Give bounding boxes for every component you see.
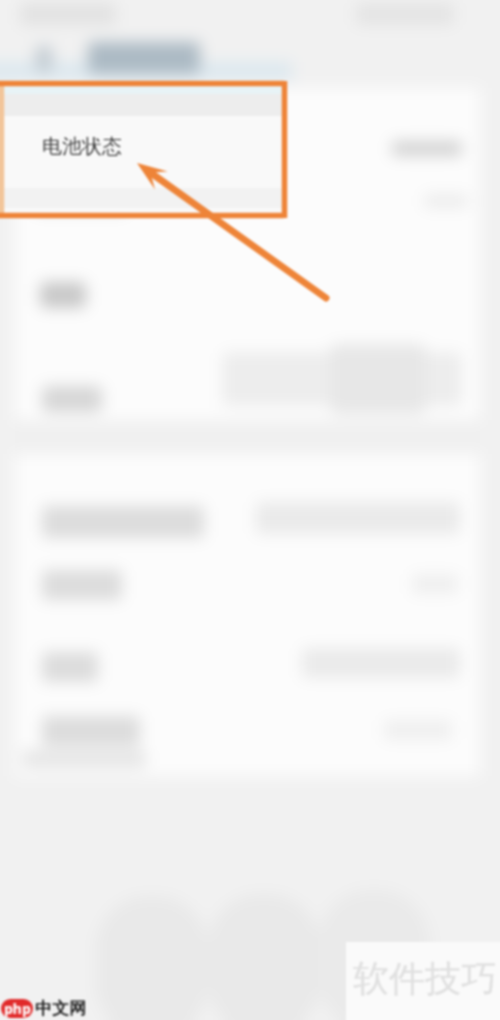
other: Annotation highlight (0, 0, 500, 1020)
staticText: 电池状态 (42, 134, 122, 159)
staticText: 软件技巧 (353, 956, 497, 1001)
button[interactable]: 电池状态 (3, 86, 284, 215)
staticText: 中文网 (35, 998, 86, 1019)
staticText: php (4, 999, 31, 1018)
